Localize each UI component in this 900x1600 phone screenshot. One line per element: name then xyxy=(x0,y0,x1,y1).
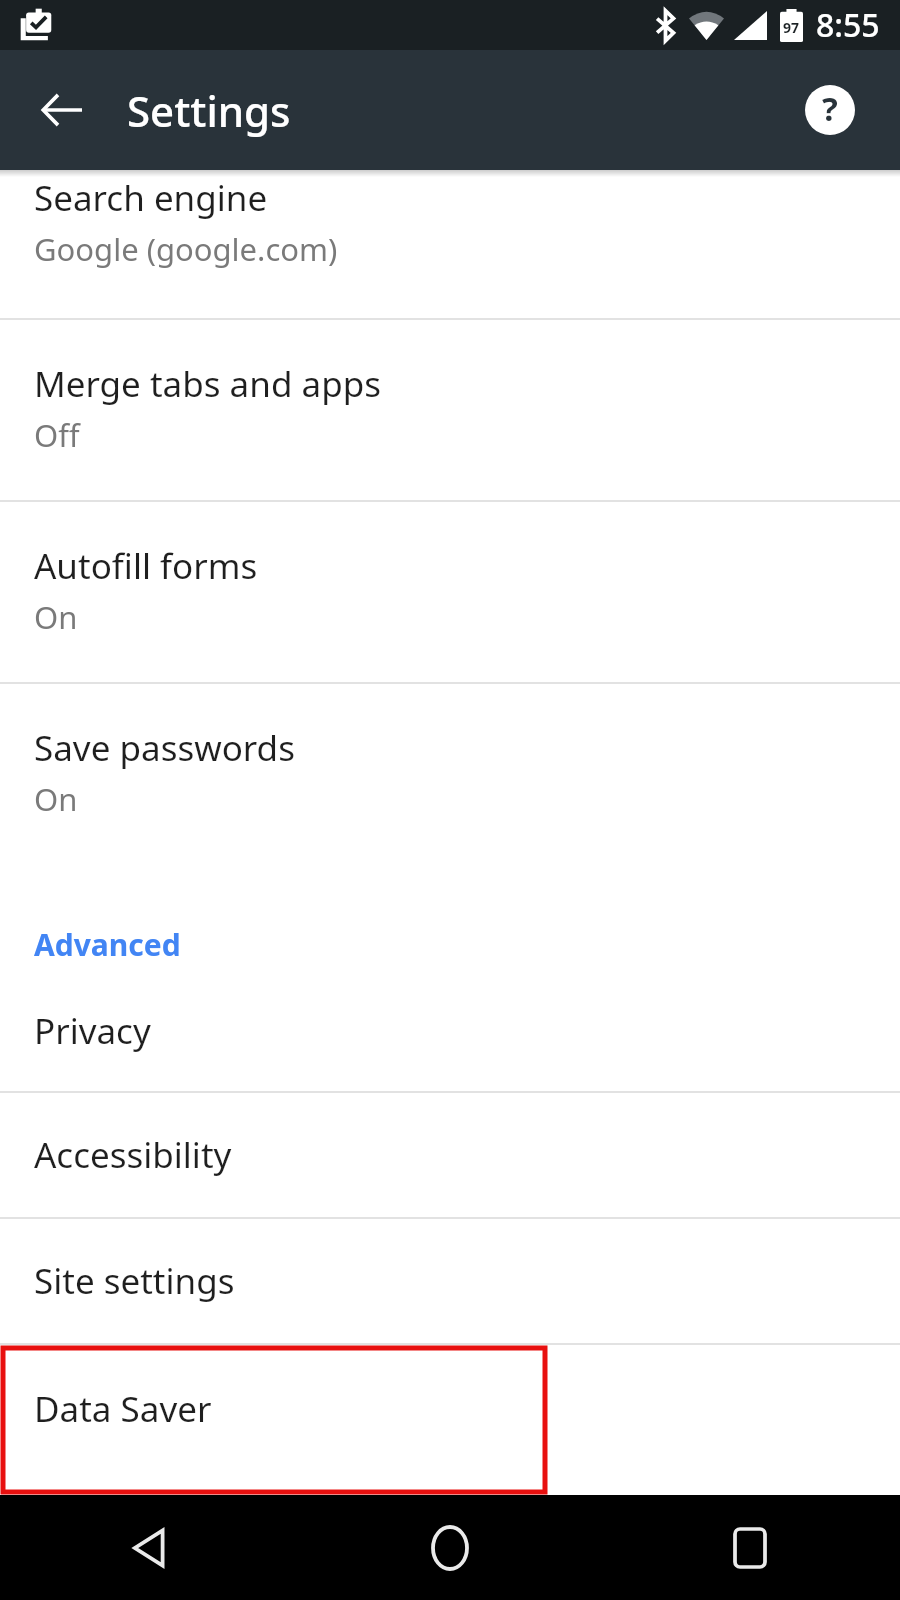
staticText: Privacy xyxy=(34,1007,151,1055)
staticText: Accessibility xyxy=(34,1131,232,1179)
button[interactable]: Data Saver xyxy=(0,1345,900,1495)
staticText: Autofill forms xyxy=(34,542,258,590)
staticText: Site settings xyxy=(34,1257,235,1305)
staticText: Merge tabs and apps xyxy=(34,360,381,408)
staticText: Google (google.com) xyxy=(34,228,338,270)
staticText: Advanced xyxy=(34,924,181,965)
button[interactable]: Back xyxy=(0,1495,300,1600)
staticText: Settings xyxy=(127,82,291,139)
staticText: ? xyxy=(822,86,838,131)
button[interactable]: Accessibility xyxy=(0,1093,900,1217)
button[interactable]: Help xyxy=(792,72,868,148)
staticText: Off xyxy=(34,414,80,456)
staticText: 97 xyxy=(783,18,800,37)
staticText: On xyxy=(34,778,78,820)
button[interactable]: Autofill forms xyxy=(0,502,900,682)
staticText: Search engine xyxy=(34,174,268,222)
staticText: Data Saver xyxy=(34,1385,212,1433)
button[interactable]: Back xyxy=(20,68,104,152)
button[interactable]: Search engine xyxy=(0,170,900,318)
button[interactable]: Home xyxy=(300,1495,600,1600)
button[interactable]: Save passwords xyxy=(0,684,900,864)
button[interactable]: Privacy xyxy=(0,973,900,1091)
button[interactable]: Merge tabs and apps xyxy=(0,320,900,500)
button[interactable]: Site settings xyxy=(0,1219,900,1343)
button[interactable]: Recent apps xyxy=(600,1495,900,1600)
staticText: On xyxy=(34,596,78,638)
staticText: Save passwords xyxy=(34,724,295,772)
staticText: 8:55 xyxy=(816,3,880,47)
